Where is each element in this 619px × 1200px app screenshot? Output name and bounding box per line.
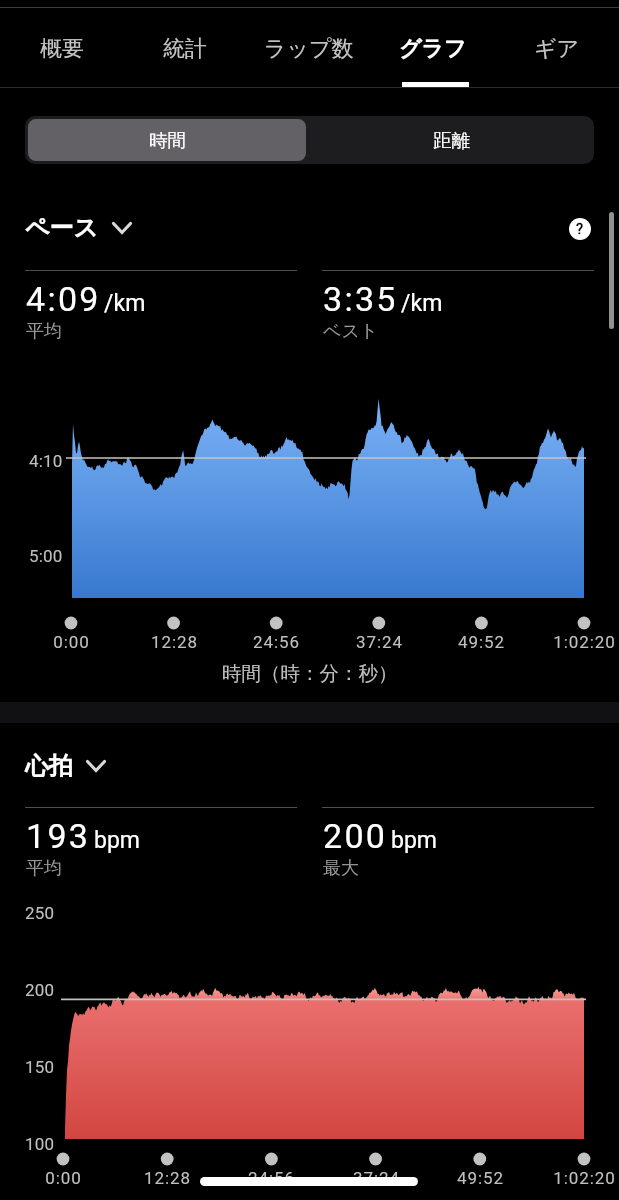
staticText: ? [576,220,584,238]
staticText: 3:35 [323,279,398,319]
staticText: 49:52 [457,1168,504,1188]
staticText: 概要 [40,35,84,63]
staticText: 193 [26,816,91,856]
staticText: 250 [25,903,55,923]
button[interactable]: 統計 [123,8,247,87]
staticText: bpm [94,827,140,854]
staticText: 時間 [149,129,186,152]
staticText: ラップ数 [264,35,354,63]
button[interactable]: 距離 [309,116,594,164]
staticText: 1:02:20 [553,632,616,652]
staticText: 100 [25,1134,55,1154]
staticText: 150 [25,1057,55,1077]
button[interactable]: 心拍 [25,751,107,781]
staticText: 距離 [433,129,470,152]
staticText: 12:28 [151,632,198,652]
button[interactable]: ギア [495,8,619,87]
staticText: 12:28 [144,1168,191,1188]
staticText: 37:24 [353,1168,400,1188]
staticText: 統計 [163,35,207,63]
staticText: 4:09 [26,279,101,319]
staticText: 24:56 [248,1168,295,1188]
button[interactable]: ラップ数 [247,8,371,87]
staticText: ベスト [323,320,379,343]
staticText: 24:56 [253,632,300,652]
staticText: 5:00 [29,546,63,566]
staticText: 時間（時：分：秒） [222,661,398,686]
staticText: 0:00 [45,1168,82,1188]
button[interactable]: ペース [25,213,133,243]
staticText: 200 [323,816,388,856]
staticText: 平均 [26,857,62,880]
button[interactable]: 時間 [28,119,306,161]
staticText: 0:00 [53,632,90,652]
staticText: 4:10 [29,451,63,471]
staticText: /km [401,290,443,317]
button[interactable]: グラフ [371,8,495,87]
staticText: 平均 [26,320,62,343]
staticText: /km [104,290,146,317]
staticText: ペース [25,213,99,243]
button[interactable]: Help [569,218,591,240]
staticText: 心拍 [25,751,73,781]
staticText: 37:24 [356,632,403,652]
staticText: ギア [534,35,580,63]
staticText: グラフ [399,35,467,63]
staticText: 最大 [323,857,359,880]
staticText: 200 [25,980,55,1000]
button[interactable]: 概要 [0,8,123,87]
staticText: 1:02:20 [553,1168,616,1188]
staticText: bpm [391,827,437,854]
staticText: 49:52 [458,632,505,652]
